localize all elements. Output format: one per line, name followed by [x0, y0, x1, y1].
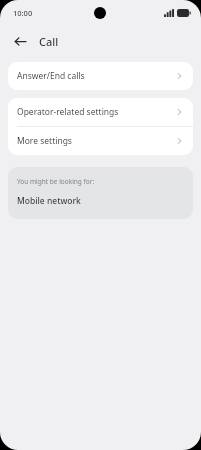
button[interactable]: Operator-related settings: [8, 98, 193, 126]
staticText: Call: [39, 34, 59, 49]
staticText: More settings: [17, 135, 72, 147]
staticText: 10:00: [13, 8, 33, 18]
button[interactable]: Mobile network: [17, 195, 81, 207]
staticText: Mobile network: [17, 195, 81, 207]
button[interactable]: More settings: [8, 127, 193, 155]
staticText: Answer/End calls: [17, 70, 85, 82]
button[interactable]: Answer/End calls: [8, 62, 193, 90]
staticText: Operator-related settings: [17, 106, 119, 118]
staticText: You might be looking for:: [17, 177, 95, 186]
button[interactable]: Back: [11, 32, 29, 50]
